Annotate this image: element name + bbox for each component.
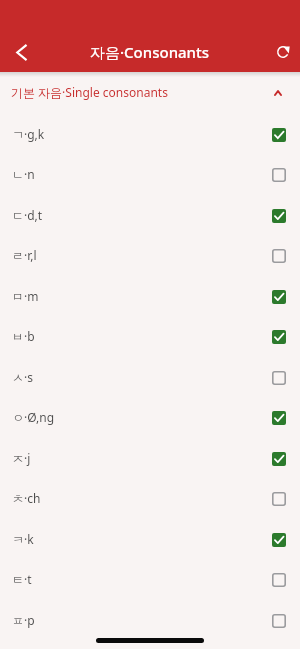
staticText: 기본 자음·Single consonants	[11, 84, 168, 100]
staticText: 자음·Consonants	[90, 42, 210, 62]
staticText: ㅈ·j	[12, 450, 31, 466]
button[interactable]: ㅍ·p	[0, 600, 300, 641]
staticText: ㅇ·Ø,ng	[12, 409, 55, 425]
button[interactable]: ㅂ·b	[0, 316, 300, 357]
button[interactable]: ㄴ·n	[0, 154, 300, 195]
staticText: ㄹ·r,l	[12, 247, 37, 263]
button[interactable]: ㄷ·d,t	[0, 195, 300, 236]
button[interactable]: ㅇ·Ø,ng	[0, 397, 300, 438]
staticText: ㅋ·k	[12, 531, 34, 547]
button[interactable]: 기본 자음·Single consonants	[0, 72, 300, 114]
button[interactable]: ㅈ·j	[0, 438, 300, 479]
staticText: ㅂ·b	[12, 328, 35, 344]
button[interactable]: Refresh	[267, 36, 299, 68]
staticText: ㄴ·n	[12, 166, 35, 182]
button[interactable]: ㅌ·t	[0, 559, 300, 600]
staticText: ㅌ·t	[12, 571, 32, 587]
button[interactable]: ㅋ·k	[0, 519, 300, 560]
staticText: ㅁ·m	[12, 288, 39, 304]
staticText: ㄱ·g,k	[12, 126, 45, 142]
button[interactable]: ㄹ·r,l	[0, 235, 300, 276]
button[interactable]: ㅊ·ch	[0, 478, 300, 519]
button[interactable]: ㅎ·h	[0, 640, 300, 649]
staticText: ㅍ·p	[12, 612, 35, 628]
button[interactable]: ㅅ·s	[0, 357, 300, 398]
button[interactable]: ㅁ·m	[0, 276, 300, 317]
button[interactable]: Collapse section	[264, 79, 292, 107]
button[interactable]: ㄱ·g,k	[0, 114, 300, 155]
button[interactable]: Back	[5, 36, 37, 68]
staticText: ㅊ·ch	[12, 490, 41, 506]
staticText: ㄷ·d,t	[12, 207, 43, 223]
staticText: ㅅ·s	[12, 369, 33, 385]
